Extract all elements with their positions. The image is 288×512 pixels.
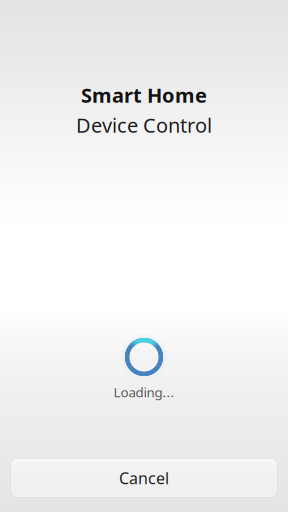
button[interactable]: Cancel [10,458,278,498]
staticText: Device Control [76,112,212,138]
staticText: Smart Home [81,82,207,108]
staticText: Loading... [113,383,174,401]
staticText: Cancel [119,467,169,489]
